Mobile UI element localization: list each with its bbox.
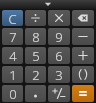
button[interactable]: Decimal point <box>25 85 46 102</box>
button[interactable]: Divide <box>25 10 46 26</box>
button[interactable]: 4 <box>2 47 23 64</box>
staticText: 5 <box>32 47 40 64</box>
staticText: 6 <box>55 47 63 64</box>
button[interactable]: Expand calculator display <box>0 0 96 9</box>
button[interactable]: 7 <box>2 28 23 45</box>
staticText: 8 <box>32 28 40 45</box>
staticText: 7 <box>9 28 17 45</box>
staticText: C <box>8 10 17 26</box>
button[interactable]: Parentheses <box>72 66 94 83</box>
button[interactable]: Equals <box>72 85 94 102</box>
button[interactable]: Plus minus sign <box>48 85 70 102</box>
button[interactable]: Plus <box>72 47 94 64</box>
button[interactable]: 3 <box>48 66 70 83</box>
button[interactable]: Backspace <box>72 10 94 26</box>
button[interactable]: Multiply <box>48 10 70 26</box>
button[interactable]: 2 <box>25 66 46 83</box>
button[interactable]: 0 <box>2 85 23 102</box>
button[interactable]: 6 <box>48 47 70 64</box>
button[interactable]: Minus <box>72 28 94 45</box>
button[interactable]: 5 <box>25 47 46 64</box>
staticText: 1 <box>9 66 17 83</box>
staticText: 9 <box>55 28 63 45</box>
staticText: 4 <box>9 47 17 64</box>
staticText: 3 <box>55 66 63 83</box>
staticText: 2 <box>32 66 40 83</box>
button[interactable]: 8 <box>25 28 46 45</box>
button[interactable]: 1 <box>2 66 23 83</box>
staticText: 0 <box>9 85 17 102</box>
button[interactable]: 9 <box>48 28 70 45</box>
button[interactable]: C <box>2 10 23 26</box>
